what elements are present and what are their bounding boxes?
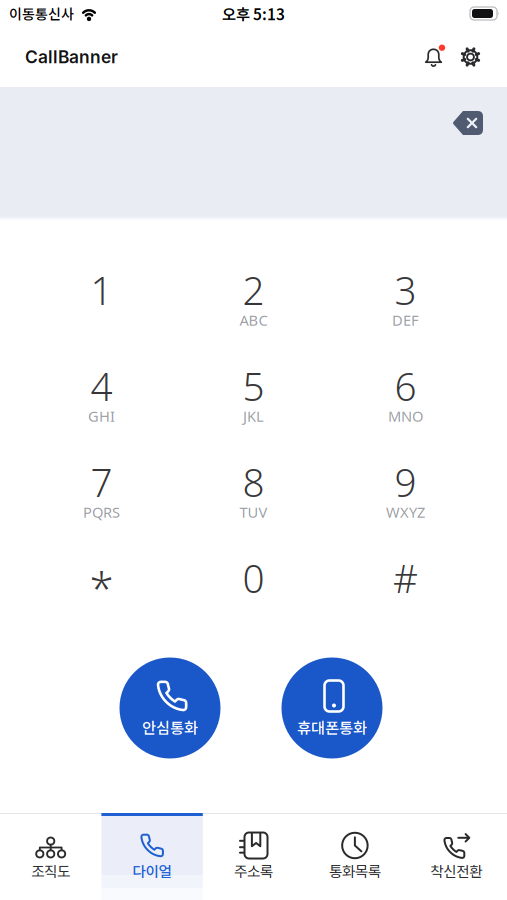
button[interactable]: 1 xyxy=(25,242,177,338)
button[interactable]: 휴대폰통화 xyxy=(281,657,382,758)
button[interactable]: 4 xyxy=(25,338,177,434)
button[interactable]: 7 xyxy=(25,434,177,530)
button[interactable]: 3 xyxy=(329,242,481,338)
staticText: JKL xyxy=(243,406,264,426)
staticText: 주소록 xyxy=(234,860,273,881)
staticText: 다이얼 xyxy=(133,860,172,881)
staticText: ABC xyxy=(239,310,267,330)
button[interactable]: # xyxy=(329,530,481,626)
staticText: WXYZ xyxy=(386,502,425,522)
staticText: 오후 5:13 xyxy=(222,2,285,25)
staticText: 착신전환 xyxy=(430,860,482,881)
staticText: 9 xyxy=(394,456,416,508)
staticText: 0 xyxy=(242,552,264,604)
button[interactable]: 안심통화 xyxy=(119,657,220,758)
staticText: 5 xyxy=(242,360,264,412)
button[interactable]: Delete xyxy=(453,111,483,135)
button[interactable]: 통화목록 xyxy=(304,813,406,900)
button[interactable]: 8 xyxy=(177,434,329,530)
staticText: 안심통화 xyxy=(142,716,198,738)
button[interactable]: Settings xyxy=(460,46,481,67)
button[interactable]: 6 xyxy=(329,338,481,434)
button[interactable]: Notifications xyxy=(423,46,444,67)
button[interactable]: 착신전환 xyxy=(406,813,507,900)
staticText: DEF xyxy=(392,310,419,330)
staticText: 8 xyxy=(242,456,264,508)
button[interactable]: 다이얼 xyxy=(101,813,203,900)
staticText: * xyxy=(89,558,113,618)
staticText: PQRS xyxy=(83,502,120,522)
button[interactable]: 2 xyxy=(177,242,329,338)
button[interactable]: 0 xyxy=(177,530,329,626)
staticText: 7 xyxy=(90,456,112,508)
staticText: 4 xyxy=(90,360,112,412)
staticText: 통화목록 xyxy=(329,860,381,881)
staticText: 휴대폰통화 xyxy=(297,716,367,738)
button[interactable]: * xyxy=(25,530,177,626)
button[interactable]: 5 xyxy=(177,338,329,434)
staticText: GHI xyxy=(88,406,115,426)
staticText: 6 xyxy=(394,360,416,412)
staticText: # xyxy=(393,552,418,604)
staticText: 조직도 xyxy=(31,860,70,881)
button[interactable]: 주소록 xyxy=(203,813,304,900)
staticText: TUV xyxy=(239,502,267,522)
staticText: MNO xyxy=(388,406,423,426)
staticText: 이동통신사 xyxy=(9,3,74,24)
staticText: 1 xyxy=(90,264,112,316)
staticText: CallBanner xyxy=(25,46,118,67)
button[interactable]: 조직도 xyxy=(0,813,101,900)
staticText: 2 xyxy=(242,264,264,316)
staticText: 3 xyxy=(394,264,416,316)
button[interactable]: 9 xyxy=(329,434,481,530)
